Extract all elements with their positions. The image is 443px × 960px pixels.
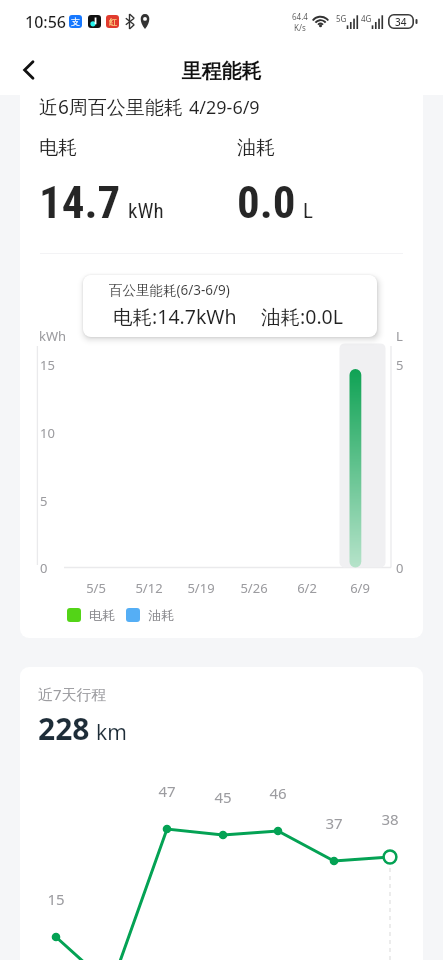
staticText: 红 xyxy=(109,17,117,27)
staticText: 14.7 xyxy=(39,176,121,229)
staticText: 里程能耗 xyxy=(0,59,443,84)
staticText: 0 xyxy=(396,559,404,577)
staticText: 15 xyxy=(40,356,55,374)
staticText: L xyxy=(303,199,313,224)
staticText: 0.0 xyxy=(237,176,296,229)
staticText: 5 xyxy=(396,356,404,374)
staticText: km xyxy=(96,718,127,747)
staticText: 电耗 xyxy=(89,607,115,623)
staticText: 5G xyxy=(336,13,347,24)
staticText: kWh xyxy=(39,327,67,345)
staticText: 15 xyxy=(36,889,76,909)
staticText: 电耗:14.7kWh xyxy=(113,303,237,330)
staticText: 228 xyxy=(38,708,90,749)
staticText: 6/2 xyxy=(282,579,332,597)
staticText: 10 xyxy=(40,424,55,442)
staticText: 5/12 xyxy=(124,579,174,597)
staticText: 10:56 xyxy=(25,11,66,33)
staticText: 油耗 xyxy=(148,607,174,623)
staticText: 46 xyxy=(258,783,298,803)
staticText: 34 xyxy=(395,15,407,29)
staticText: 油耗:0.0L xyxy=(261,303,343,330)
staticText: 45 xyxy=(203,787,243,807)
staticText: 5/5 xyxy=(71,579,121,597)
staticText: kWh xyxy=(128,199,164,224)
staticText: 5/26 xyxy=(229,579,279,597)
staticText: 近6周百公里能耗 xyxy=(39,95,183,120)
staticText: 近7天行程 xyxy=(38,684,107,704)
staticText: 支 xyxy=(71,16,80,27)
staticText: L xyxy=(396,327,403,345)
staticText: 5 xyxy=(40,492,48,510)
button[interactable]: Back xyxy=(7,48,51,92)
staticText: 47 xyxy=(147,781,187,801)
staticText: 4G xyxy=(361,13,372,24)
staticText: K/s xyxy=(294,22,306,33)
staticText: 5/19 xyxy=(176,579,226,597)
staticText: 百公里能耗(6/3-6/9) xyxy=(109,281,230,299)
staticText: 38 xyxy=(370,809,410,829)
staticText: 0 xyxy=(40,559,48,577)
staticText: 油耗 xyxy=(237,136,275,160)
staticText: 37 xyxy=(314,813,354,833)
staticText: 64.4 xyxy=(292,11,308,22)
staticText: 6/9 xyxy=(335,579,385,597)
staticText: 4/29-6/9 xyxy=(189,95,260,120)
staticText: 电耗 xyxy=(39,136,77,160)
